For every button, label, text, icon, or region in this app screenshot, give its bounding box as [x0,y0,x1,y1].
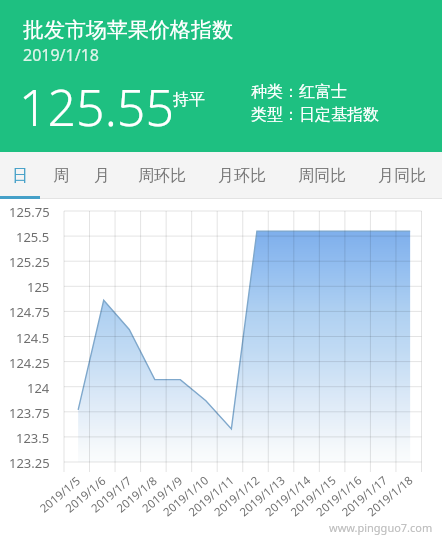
staticText: 日 [12,166,28,186]
button[interactable]: 周 [40,152,81,199]
staticText: 125.55 [19,73,174,141]
staticText: 周 [53,166,69,186]
button[interactable]: 周环比 [122,152,202,199]
staticText: 批发市场苹果价格指数 [23,17,233,43]
staticText: 月同比 [378,166,426,186]
staticText: 月环比 [218,166,266,186]
staticText: 月 [94,166,110,186]
button[interactable]: 月 [81,152,122,199]
button[interactable]: 日 [0,152,40,199]
button[interactable]: 月同比 [362,152,442,199]
button[interactable]: 月环比 [202,152,282,199]
staticText: 周同比 [298,166,346,186]
staticText: 类型：日定基指数 [251,105,379,125]
staticText: 2019/1/18 [23,44,99,66]
staticText: 周环比 [138,166,186,186]
staticText: 持平 [173,90,205,110]
button[interactable]: 周同比 [282,152,362,199]
staticText: 种类：红富士 [251,82,347,102]
